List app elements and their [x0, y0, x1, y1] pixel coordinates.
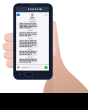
button[interactable]: [0, 0, 88, 110]
